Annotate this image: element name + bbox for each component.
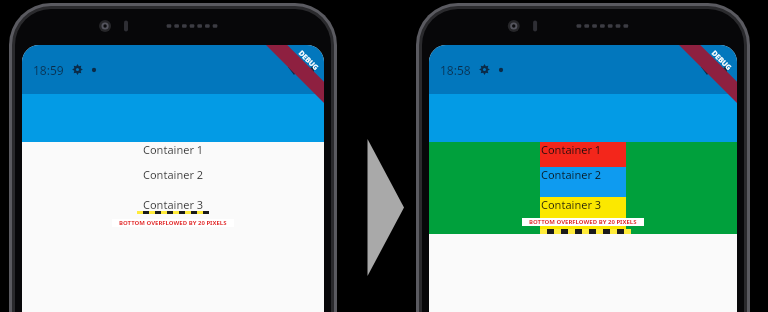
button[interactable]: Container 2 (540, 167, 626, 197)
staticText: Container 2 (143, 167, 204, 182)
button[interactable]: Container 1 (540, 142, 626, 167)
staticText: Container 1 (541, 142, 602, 157)
staticText: 18:59 (33, 62, 64, 78)
staticText: Container 2 (541, 167, 602, 182)
staticText: BOTTOM OVERFLOWED BY 20 PIXELS (529, 218, 637, 226)
button[interactable]: Settings (479, 64, 490, 75)
button[interactable]: Container 2 (22, 167, 324, 197)
button[interactable]: Container 1 (22, 142, 324, 167)
staticText: Container 1 (143, 142, 204, 157)
staticText: 18:58 (440, 62, 471, 78)
other: Next (366, 139, 404, 276)
staticText: BOTTOM OVERFLOWED BY 20 PIXELS (119, 219, 227, 227)
staticText: Container 3 (541, 197, 602, 212)
staticText: Container 3 (143, 197, 204, 212)
button[interactable]: Container 3 (22, 197, 324, 234)
staticText: DEBUG (296, 49, 321, 73)
button[interactable]: Settings (72, 64, 83, 75)
staticText: DEBUG (709, 49, 734, 73)
button[interactable]: Container 3 (540, 197, 626, 234)
